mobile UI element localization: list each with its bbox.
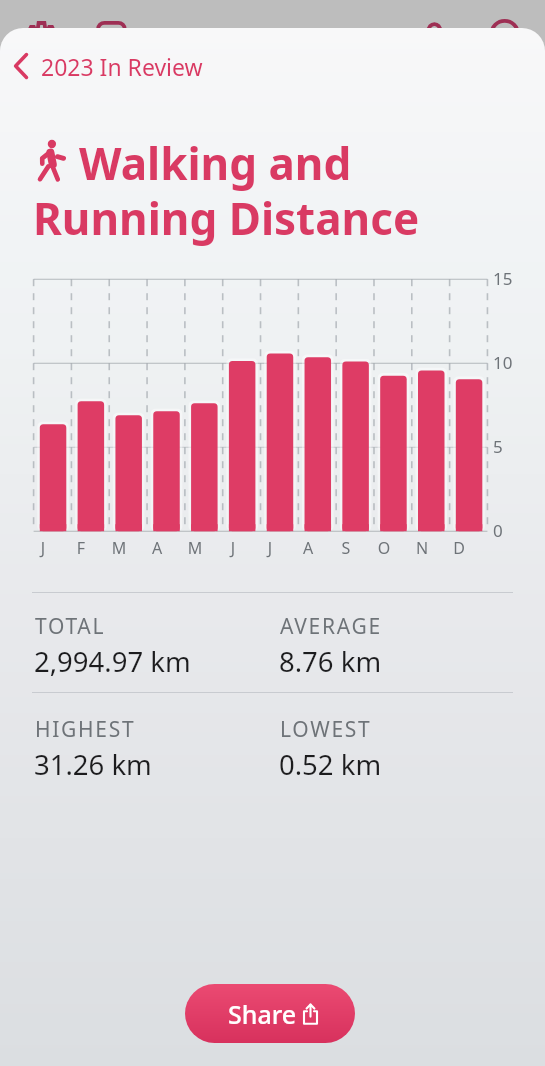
staticText: J <box>258 537 282 559</box>
staticText: M <box>183 537 207 559</box>
staticText: 2,994.97 km <box>34 643 191 680</box>
staticText: Share <box>228 997 297 1031</box>
staticText: A <box>296 537 320 559</box>
staticText: J <box>31 537 55 559</box>
staticText: 31.26 km <box>34 746 152 783</box>
staticText: N <box>410 537 434 559</box>
staticText: A <box>145 537 169 559</box>
staticText: HIGHEST <box>35 715 136 744</box>
staticText: Walking and <box>79 133 352 193</box>
button[interactable]: Back <box>7 45 206 87</box>
staticText: F <box>69 537 93 559</box>
staticText: 5 <box>493 435 503 458</box>
staticText: TOTAL <box>35 612 106 641</box>
staticText: LOWEST <box>280 715 372 744</box>
other: Share <box>302 1003 319 1025</box>
staticText: 8.76 km <box>279 643 382 680</box>
other: Back <box>10 50 32 82</box>
staticText: O <box>372 537 396 559</box>
staticText: S <box>334 537 358 559</box>
staticText: 2023 In Review <box>41 51 203 82</box>
staticText: AVERAGE <box>280 612 382 641</box>
button[interactable]: Share <box>185 984 355 1043</box>
staticText: 15 <box>493 267 513 290</box>
staticText: D <box>447 537 471 559</box>
staticText: Running Distance <box>33 188 420 248</box>
staticText: 0.52 km <box>279 746 382 783</box>
staticText: 10 <box>493 351 513 374</box>
staticText: 0 <box>493 519 503 542</box>
staticText: M <box>107 537 131 559</box>
staticText: J <box>221 537 245 559</box>
